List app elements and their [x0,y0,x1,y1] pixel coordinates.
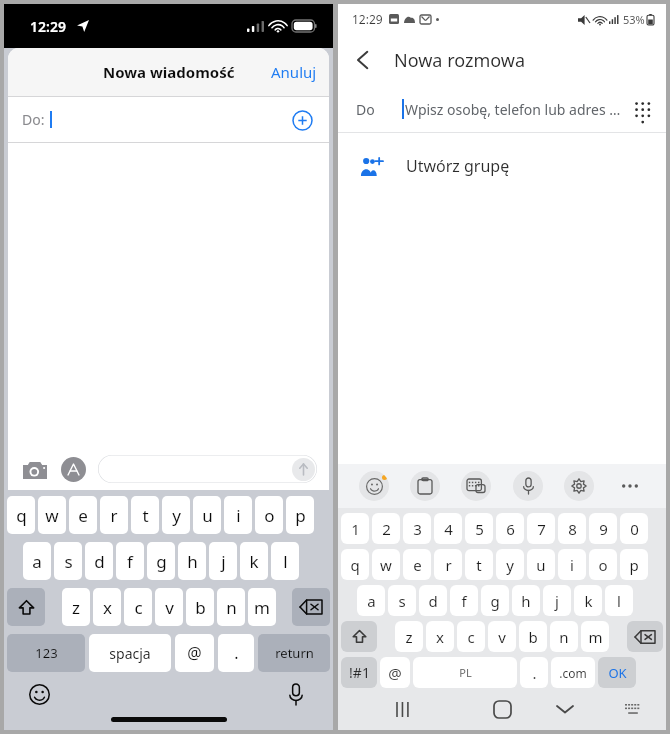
button[interactable]: Do [338,86,666,132]
button[interactable]: h [178,542,206,580]
button[interactable]: Recents [390,696,416,722]
button[interactable]: Home [489,696,515,722]
button[interactable]: b [186,588,214,626]
button[interactable]: f [116,542,144,580]
button[interactable]: . [520,657,548,688]
button[interactable]: s [54,542,82,580]
button[interactable]: u [193,496,221,534]
button[interactable]: Dialpad [621,88,663,130]
button[interactable]: l [605,585,633,616]
button[interactable]: Keyboard modes [461,471,491,501]
button[interactable]: k [240,542,268,580]
button[interactable]: Voice input [513,471,543,501]
button[interactable]: Anuluj [259,54,329,90]
button[interactable]: y [496,549,524,580]
button[interactable]: 0 [620,513,648,544]
button[interactable]: b [519,621,547,652]
button[interactable]: n [550,621,578,652]
button[interactable]: d [85,542,113,580]
button[interactable]: f [450,585,478,616]
button[interactable]: p [620,549,648,580]
button[interactable]: 7 [527,513,555,544]
button[interactable]: h [512,585,540,616]
button[interactable]: 3 [403,513,431,544]
button[interactable]: 9 [589,513,617,544]
button[interactable]: p [286,496,314,534]
button[interactable]: x [93,588,121,626]
button[interactable]: Keyboard [620,696,646,722]
button[interactable]: More options [615,471,645,501]
button[interactable]: k [574,585,602,616]
button[interactable]: Do: [8,97,329,142]
button[interactable]: !#1 [341,657,377,688]
button[interactable]: l [271,542,299,580]
button[interactable]: v [488,621,516,652]
button[interactable]: j [543,585,571,616]
button[interactable]: Apps [58,454,88,484]
button[interactable]: n [217,588,245,626]
button[interactable]: return [258,634,330,672]
staticText: o [264,504,275,527]
button[interactable]: u [527,549,555,580]
button[interactable]: z [62,588,90,626]
button[interactable]: t [465,549,493,580]
button[interactable]: s [388,585,416,616]
button[interactable]: r [100,496,128,534]
button[interactable]: Utwórz grupę [338,133,666,199]
button[interactable]: e [69,496,97,534]
button[interactable]: spacja [89,634,171,672]
button[interactable]: 2 [372,513,400,544]
button[interactable]: g [481,585,509,616]
button[interactable]: i [224,496,252,534]
button[interactable]: t [131,496,159,534]
button[interactable]: i [558,549,586,580]
button[interactable]: 1 [341,513,369,544]
button[interactable]: q [7,496,35,534]
button[interactable]: g [147,542,175,580]
button[interactable]: 123 [7,634,85,672]
button[interactable]: a [357,585,385,616]
button[interactable]: x [426,621,454,652]
button[interactable]: v [155,588,183,626]
button[interactable]: Clipboard [410,471,440,501]
button[interactable]: @ [380,657,410,688]
button[interactable]: Emoji [26,681,52,707]
button[interactable]: Settings [564,471,594,501]
button[interactable]: r [434,549,462,580]
button[interactable]: a [23,542,51,580]
button[interactable]: o [589,549,617,580]
button[interactable]: Hide keyboard [552,696,578,722]
button[interactable]: PL [413,657,517,688]
button[interactable]: w [38,496,66,534]
button[interactable]: OK [598,657,636,688]
button[interactable]: .com [551,657,595,688]
button[interactable]: 8 [558,513,586,544]
button[interactable] [7,588,45,626]
button[interactable]: z [395,621,423,652]
button[interactable]: q [341,549,369,580]
button[interactable] [341,621,377,652]
button[interactable]: c [124,588,152,626]
button[interactable]: m [248,588,276,626]
button[interactable]: j [209,542,237,580]
button[interactable]: Add contact [285,103,319,137]
button[interactable]: e [403,549,431,580]
button[interactable]: d [419,585,447,616]
button[interactable]: Dictation [283,681,309,707]
button[interactable]: Camera [20,454,50,484]
button[interactable] [98,455,317,483]
button[interactable]: Emoji [359,471,389,501]
button[interactable] [627,621,663,652]
button[interactable]: m [581,621,609,652]
button[interactable]: c [457,621,485,652]
button[interactable]: 4 [434,513,462,544]
button[interactable]: @ [175,634,214,672]
button[interactable]: 6 [496,513,524,544]
button[interactable] [292,588,330,626]
button[interactable]: y [162,496,190,534]
button[interactable]: 5 [465,513,493,544]
button[interactable]: o [255,496,283,534]
button[interactable]: . [218,634,254,672]
button[interactable]: w [372,549,400,580]
button[interactable]: Back [338,36,386,84]
